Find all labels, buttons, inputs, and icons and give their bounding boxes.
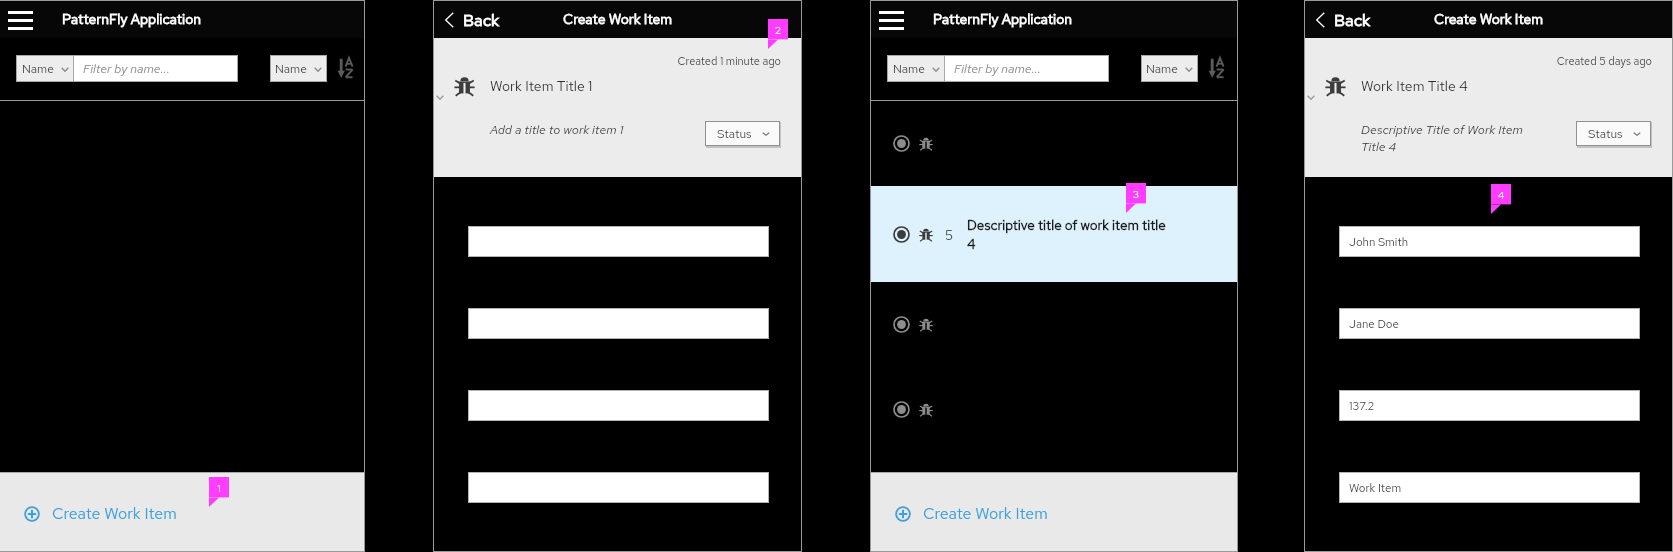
staticText: Filter by name... — [83, 60, 170, 77]
staticText: 3 — [1126, 187, 1146, 201]
staticText: Work Item Title 4 — [1361, 77, 1468, 96]
button[interactable]: Filter by name... — [74, 56, 237, 81]
staticText: Back — [463, 9, 500, 31]
staticText: Back — [1334, 9, 1371, 31]
button[interactable]: Back — [1316, 9, 1371, 31]
staticText: Status — [717, 126, 752, 142]
staticText: Create Work Item — [923, 503, 1048, 524]
button[interactable]: Sort ascending — [335, 54, 357, 82]
staticText: Descriptive title of work item title 4 — [967, 216, 1171, 253]
button[interactable] — [871, 282, 1237, 367]
staticText: Work Item Title 1 — [490, 77, 593, 96]
staticText: Descriptive Title of Work Item Title 4 — [1361, 121, 1535, 155]
button[interactable]: Open navigation menu — [4, 4, 37, 36]
button[interactable]: Name — [888, 56, 944, 81]
staticText: Create Work Item — [563, 10, 673, 29]
staticText: Created 5 days ago — [1305, 54, 1652, 69]
staticText: Created 1 minute ago — [434, 54, 781, 69]
button[interactable]: John Smith — [1340, 227, 1639, 256]
staticText: Name — [275, 61, 307, 77]
button[interactable]: Status — [1577, 122, 1650, 145]
button[interactable]: 137.2 — [1340, 391, 1639, 420]
staticText: PatternFly Application — [933, 10, 1073, 29]
button[interactable]: Create Work Item — [24, 503, 177, 524]
staticText: Status — [1588, 126, 1623, 142]
staticText: 4 — [1491, 188, 1511, 202]
staticText: Jane Doe — [1349, 316, 1399, 331]
staticText: John Smith — [1349, 234, 1409, 249]
staticText: Filter by name... — [954, 60, 1041, 77]
staticText: Create Work Item — [52, 503, 177, 524]
button[interactable]: Sort ascending — [1206, 54, 1228, 82]
button[interactable]: Work Item — [1340, 473, 1639, 502]
staticText: 2 — [768, 23, 788, 37]
button[interactable]: Create Work Item — [895, 503, 1048, 524]
staticText: Create Work Item — [1434, 10, 1544, 29]
staticText: Name — [22, 61, 54, 77]
button[interactable]: Name — [17, 56, 73, 81]
button[interactable] — [871, 101, 1237, 186]
staticText: 1 — [209, 481, 229, 495]
button[interactable]: 5 — [871, 186, 1237, 282]
button[interactable]: Jane Doe — [1340, 309, 1639, 338]
staticText: Add a title to work item 1 — [490, 121, 664, 138]
staticText: 137.2 — [1349, 398, 1375, 413]
staticText: PatternFly Application — [62, 10, 202, 29]
button[interactable]: Name — [271, 56, 326, 81]
button[interactable]: Back — [445, 9, 500, 31]
staticText: Name — [893, 61, 925, 77]
staticText: 5 — [945, 226, 954, 244]
button[interactable]: Name — [1142, 56, 1197, 81]
button[interactable] — [871, 367, 1237, 452]
button[interactable]: Status — [706, 122, 779, 145]
staticText: Name — [1146, 61, 1178, 77]
button[interactable]: Open navigation menu — [875, 4, 908, 36]
staticText: Work Item — [1349, 480, 1402, 495]
button[interactable]: Filter by name... — [945, 56, 1108, 81]
